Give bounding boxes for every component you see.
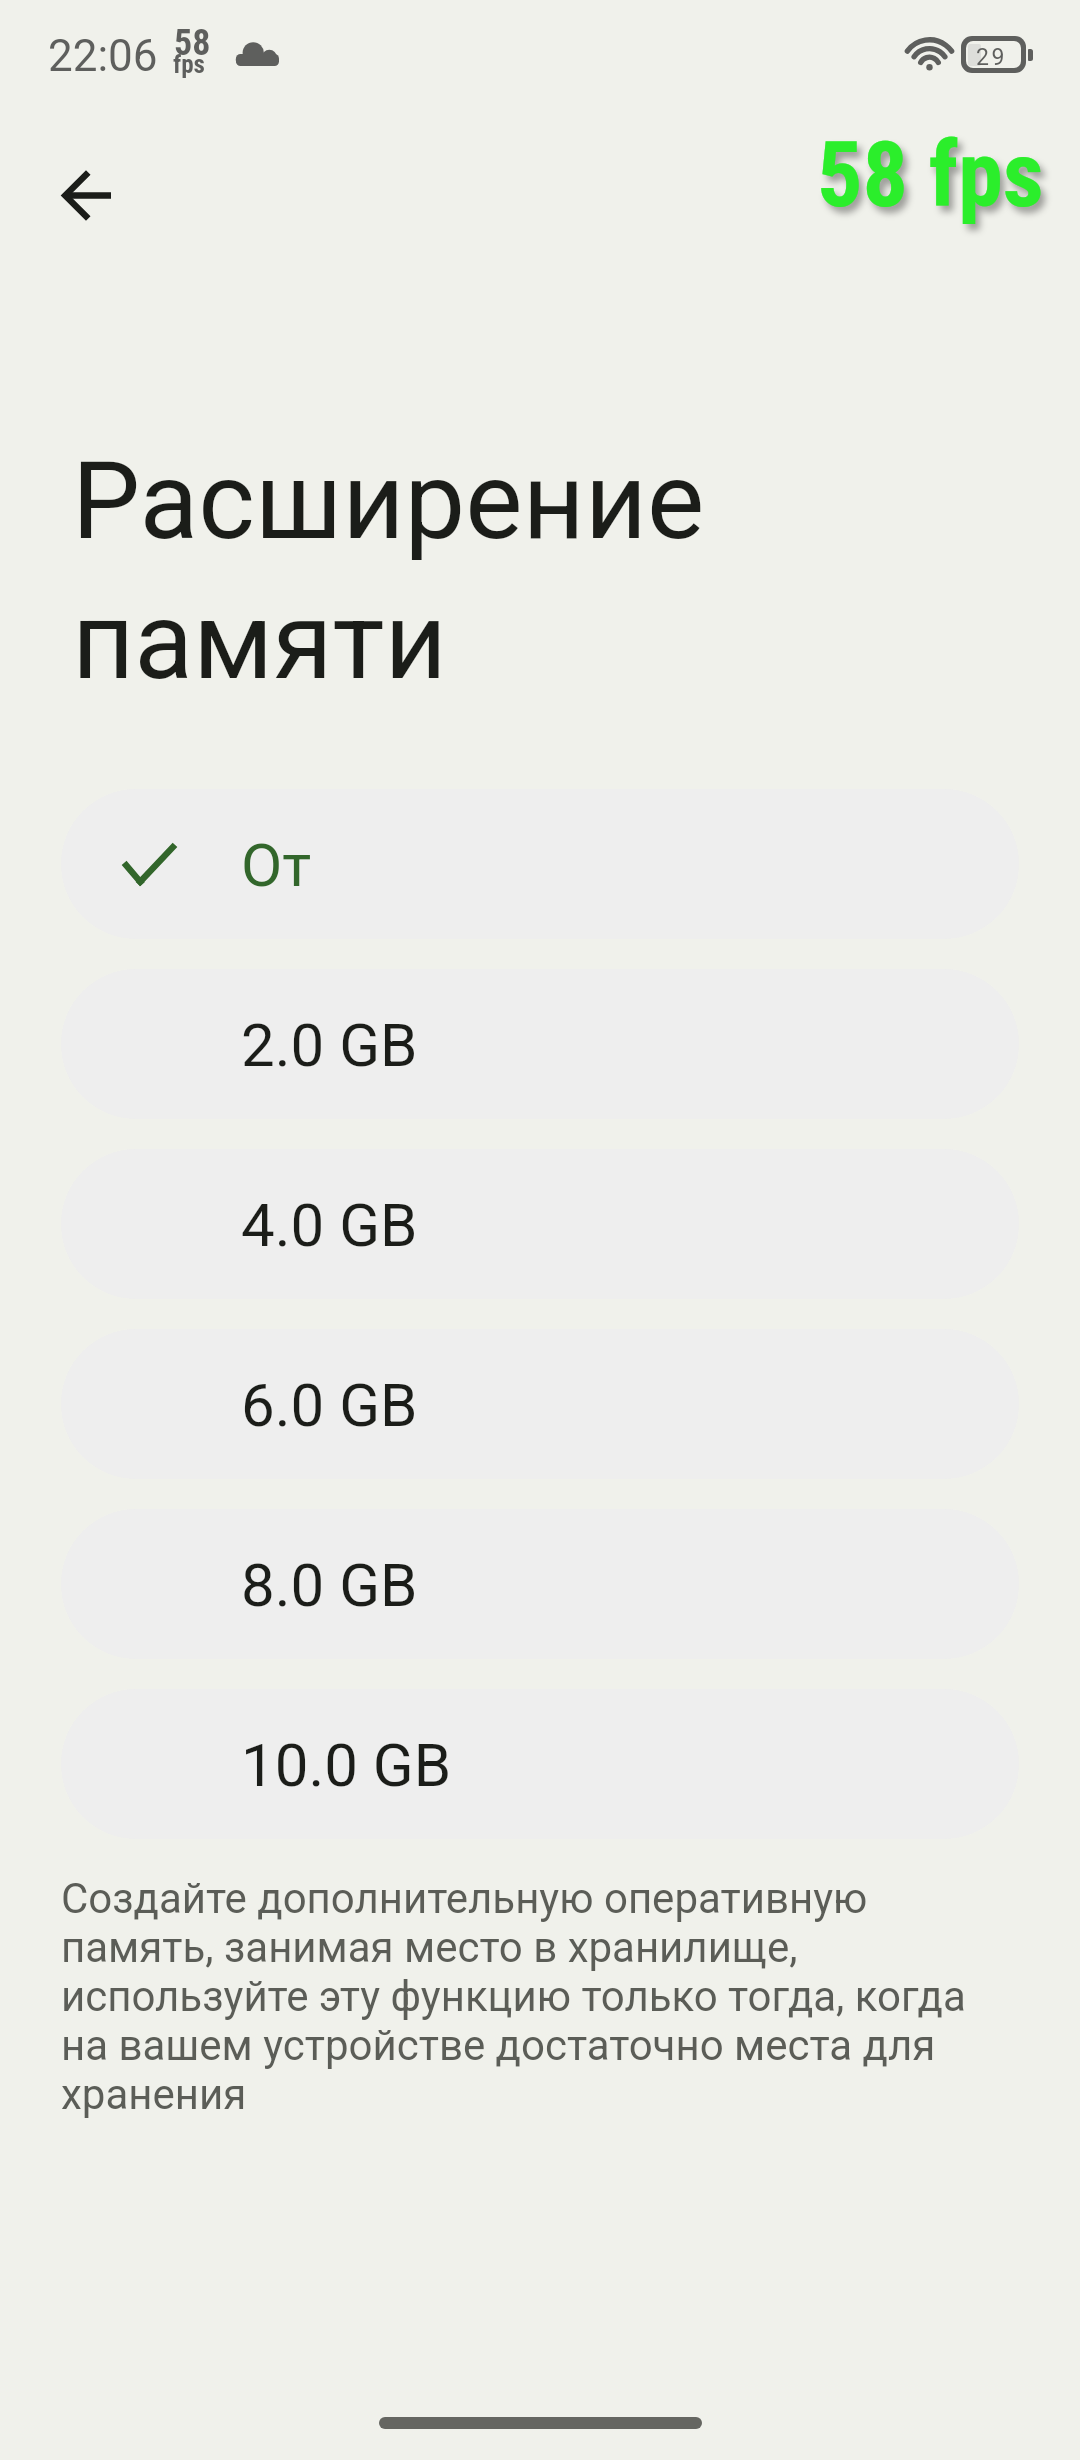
staticText: 4.0 GB (241, 1190, 418, 1260)
staticText: 58 fps (817, 123, 1044, 228)
staticText: 29 (976, 44, 1007, 68)
button[interactable]: Back (32, 141, 140, 249)
button[interactable]: 4.0 GB (61, 1149, 1019, 1299)
staticText: Создайте дополнительную оперативную памя… (61, 1874, 971, 2119)
staticText: 8.0 GB (241, 1550, 418, 1620)
button[interactable]: 10.0 GB (61, 1689, 1019, 1839)
staticText: 2.0 GB (241, 1010, 418, 1080)
staticText: 10.0 GB (241, 1730, 452, 1800)
staticText: 22:06 (48, 30, 158, 82)
staticText: 6.0 GB (241, 1370, 418, 1440)
button[interactable]: 6.0 GB (61, 1329, 1019, 1479)
button[interactable]: 2.0 GB (61, 969, 1019, 1119)
staticText: fps (173, 50, 205, 79)
staticText: От (241, 830, 312, 900)
staticText: Расширение памяти (72, 427, 705, 707)
button[interactable]: От (61, 789, 1019, 939)
button[interactable]: 8.0 GB (61, 1509, 1019, 1659)
staticText: 58 (174, 22, 211, 64)
